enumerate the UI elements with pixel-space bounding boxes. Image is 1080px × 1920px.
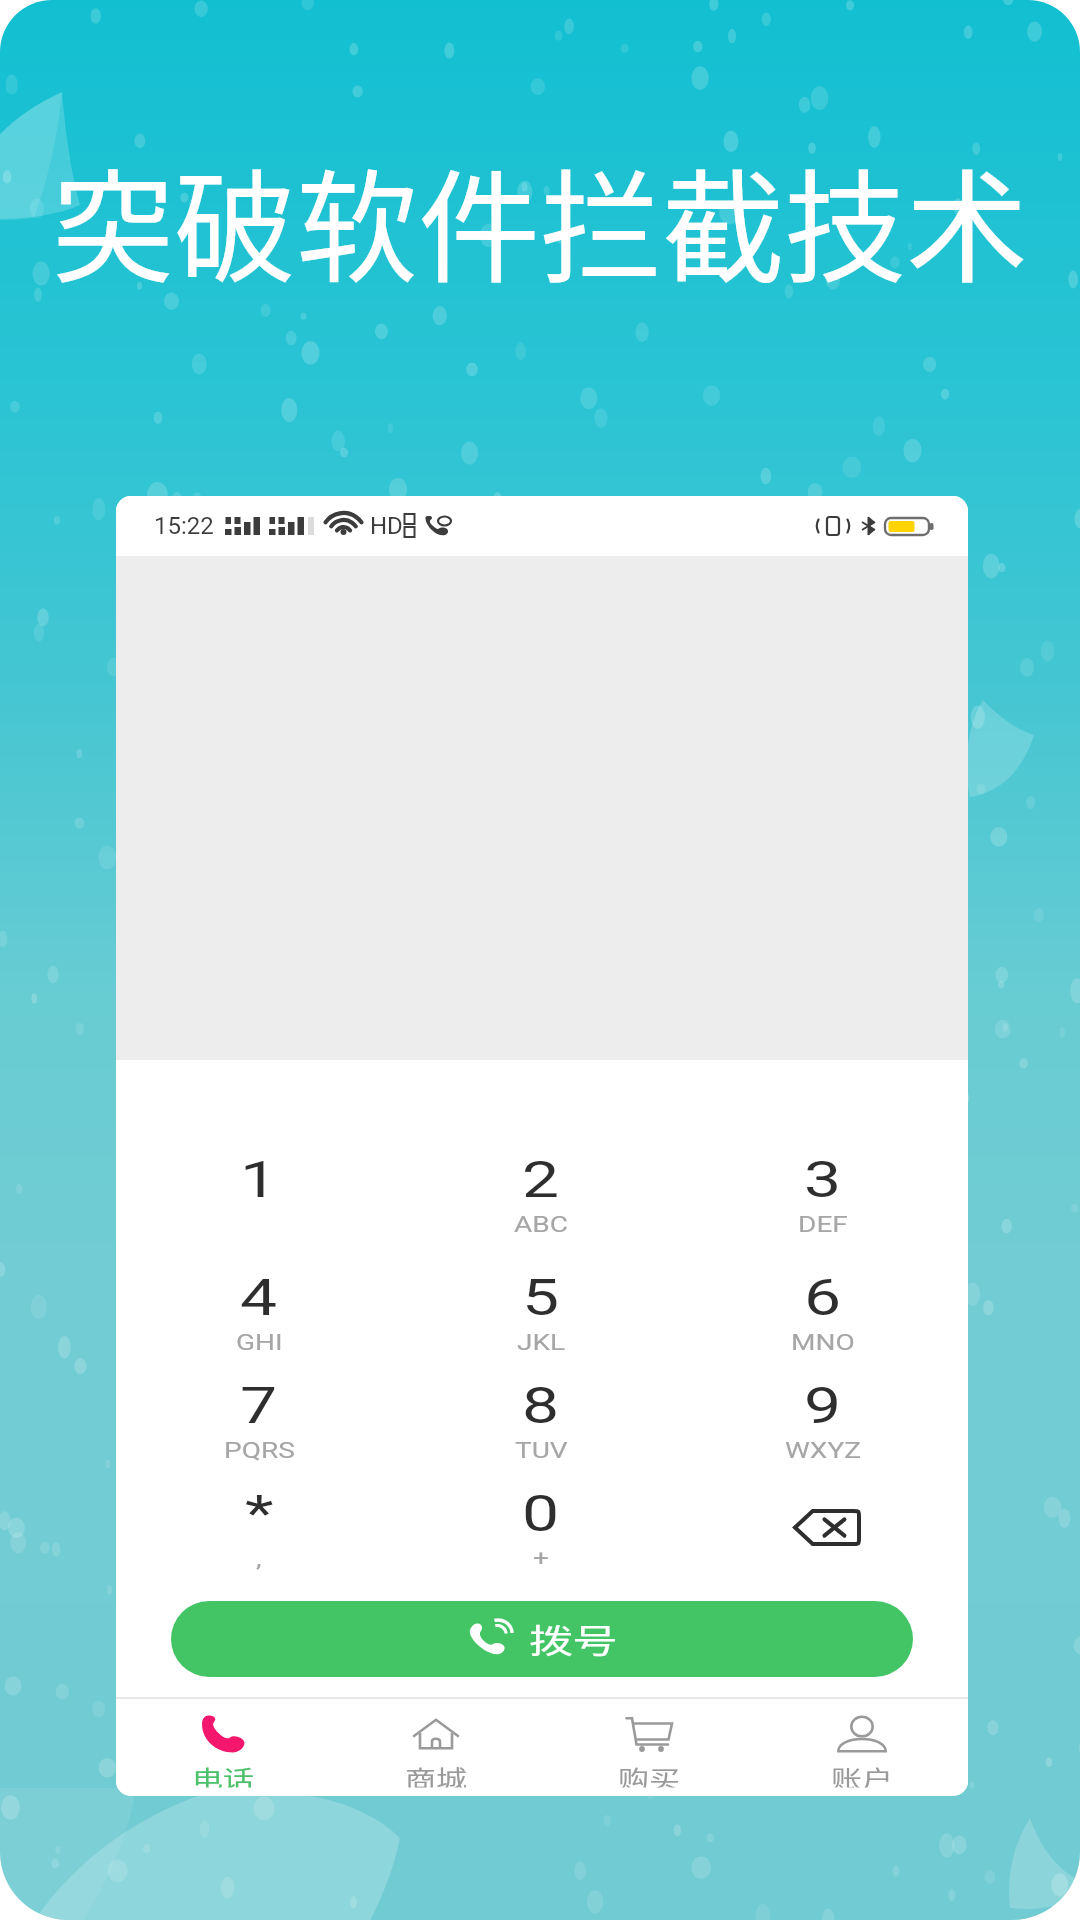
staticText: DEF	[798, 1212, 848, 1237]
staticText: 商城	[405, 1761, 467, 1788]
staticText: 7	[240, 1377, 278, 1435]
button[interactable]	[400, 1123, 684, 1233]
staticText: 9	[804, 1377, 842, 1435]
staticText: ,	[256, 1546, 262, 1571]
button[interactable]: 购买	[542, 1699, 755, 1796]
button[interactable]	[116, 1457, 400, 1567]
staticText: 2	[522, 1151, 560, 1209]
button[interactable]	[116, 1349, 400, 1459]
button[interactable]	[400, 1457, 684, 1567]
staticText: JKL	[517, 1330, 566, 1355]
staticText: HD	[370, 512, 403, 540]
staticText: TUV	[515, 1438, 568, 1463]
button[interactable]: 拨号	[171, 1601, 913, 1677]
button[interactable]	[400, 1349, 684, 1459]
staticText: PQRS	[224, 1438, 295, 1463]
staticText: WXYZ	[785, 1438, 861, 1463]
staticText: 电话	[192, 1761, 254, 1788]
staticText: ABC	[514, 1212, 568, 1237]
button[interactable]	[116, 1123, 400, 1233]
button[interactable]: 账户	[755, 1699, 968, 1796]
staticText: GHI	[236, 1330, 283, 1355]
staticText: 5	[522, 1269, 560, 1327]
staticText: 账户	[831, 1761, 893, 1788]
staticText: +	[533, 1546, 549, 1571]
staticText: 4	[240, 1269, 278, 1327]
button[interactable]	[116, 1241, 400, 1351]
staticText: 1	[240, 1151, 278, 1209]
button[interactable]	[684, 1349, 968, 1459]
staticText: 15:22	[154, 512, 214, 540]
staticText: 6	[804, 1269, 842, 1327]
staticText: 8	[522, 1377, 560, 1435]
staticText: 拨号	[529, 1615, 617, 1663]
button[interactable]	[684, 1241, 968, 1351]
button[interactable]	[684, 1123, 968, 1233]
staticText: 突破软件拦截技术	[52, 130, 1028, 307]
staticText: 购买	[618, 1761, 680, 1788]
staticText: 3	[804, 1151, 842, 1209]
button[interactable]	[400, 1241, 684, 1351]
button[interactable]	[684, 1457, 968, 1567]
button[interactable]: 电话	[116, 1699, 329, 1796]
button[interactable]: 商城	[329, 1699, 542, 1796]
staticText: MNO	[791, 1330, 855, 1355]
staticText: *	[245, 1485, 274, 1543]
staticText: 0	[522, 1485, 560, 1543]
other: Delete	[792, 1509, 861, 1546]
